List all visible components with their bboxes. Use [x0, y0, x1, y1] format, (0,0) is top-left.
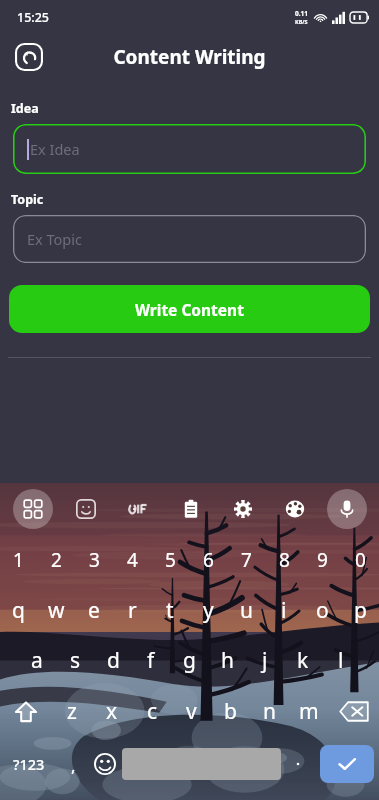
- staticText: 2: [51, 547, 62, 573]
- button[interactable]: Enter: [320, 745, 374, 783]
- button[interactable]: Backspace: [328, 685, 379, 738]
- staticText: ?123: [13, 754, 45, 774]
- staticText: i: [281, 596, 287, 625]
- button[interactable]: p: [341, 585, 379, 635]
- button[interactable]: Write Content: [9, 285, 370, 333]
- button[interactable]: Theme: [269, 483, 321, 535]
- button[interactable]: Apps: [6, 483, 59, 535]
- button[interactable]: 5: [151, 535, 189, 585]
- button[interactable]: 3: [75, 535, 113, 585]
- button[interactable]: g: [170, 635, 208, 685]
- staticText: z: [67, 697, 77, 726]
- button[interactable]: 2: [37, 535, 75, 585]
- staticText: y: [203, 596, 214, 625]
- button[interactable]: e: [75, 585, 113, 635]
- button[interactable]: z: [52, 685, 92, 738]
- staticText: ,: [71, 754, 76, 777]
- button[interactable]: ,: [58, 738, 88, 790]
- button[interactable]: x: [92, 685, 132, 738]
- staticText: h: [221, 646, 234, 675]
- button[interactable]: Settings: [217, 483, 269, 535]
- button[interactable]: Shift: [0, 685, 52, 738]
- staticText: 0: [355, 547, 366, 573]
- button[interactable]: j: [246, 635, 284, 685]
- button[interactable]: Back: [14, 42, 44, 72]
- staticText: 4: [127, 547, 138, 573]
- staticText: Topic: [11, 191, 44, 208]
- staticText: x: [106, 697, 118, 726]
- staticText: 3: [89, 547, 100, 573]
- staticText: l: [338, 646, 344, 675]
- button[interactable]: GIF: [112, 483, 165, 535]
- staticText: 6: [203, 547, 214, 573]
- staticText: Content Writing: [113, 44, 266, 70]
- button[interactable]: Ex Topic: [13, 215, 366, 263]
- staticText: v: [186, 697, 197, 726]
- button[interactable]: t: [151, 585, 189, 635]
- staticText: n: [263, 697, 276, 726]
- button[interactable]: 0: [341, 535, 379, 585]
- staticText: Ex Idea: [30, 139, 80, 159]
- button[interactable]: l: [322, 635, 360, 685]
- staticText: Ex Topic: [27, 229, 82, 249]
- button[interactable]: s: [56, 635, 94, 685]
- staticText: Idea: [11, 100, 39, 117]
- button[interactable]: 9: [303, 535, 341, 585]
- button[interactable]: b: [211, 685, 250, 738]
- button[interactable]: v: [172, 685, 211, 738]
- button[interactable]: 7: [227, 535, 265, 585]
- button[interactable]: 4: [113, 535, 151, 585]
- staticText: s: [70, 646, 81, 675]
- staticText: c: [147, 697, 158, 726]
- staticText: a: [31, 646, 43, 675]
- staticText: r: [128, 596, 137, 625]
- button[interactable]: f: [132, 635, 170, 685]
- button[interactable]: Voice input: [321, 483, 373, 535]
- staticText: d: [107, 646, 120, 675]
- button[interactable]: y: [189, 585, 227, 635]
- staticText: f: [147, 646, 155, 675]
- button[interactable]: 6: [189, 535, 227, 585]
- button[interactable]: ?123: [0, 738, 58, 790]
- button[interactable]: d: [94, 635, 132, 685]
- button[interactable]: o: [303, 585, 341, 635]
- staticText: m: [299, 697, 319, 726]
- button[interactable]: c: [132, 685, 172, 738]
- button[interactable]: i: [265, 585, 303, 635]
- staticText: 9: [317, 547, 328, 573]
- button[interactable]: 8: [265, 535, 303, 585]
- staticText: g: [183, 646, 196, 675]
- button[interactable]: Space: [122, 748, 281, 780]
- staticText: o: [316, 596, 329, 625]
- staticText: 0.11: [295, 9, 308, 18]
- button[interactable]: h: [208, 635, 246, 685]
- staticText: 7: [241, 547, 252, 573]
- button[interactable]: 1: [0, 535, 37, 585]
- button[interactable]: k: [284, 635, 322, 685]
- staticText: 1: [13, 547, 24, 573]
- button[interactable]: Ex Idea: [13, 124, 366, 174]
- button[interactable]: Clipboard: [165, 483, 217, 535]
- button[interactable]: m: [289, 685, 328, 738]
- staticText: 15:25: [17, 9, 50, 26]
- button[interactable]: a: [18, 635, 56, 685]
- staticText: k: [297, 646, 309, 675]
- button[interactable]: [281, 738, 315, 790]
- staticText: e: [88, 596, 100, 625]
- staticText: p: [354, 596, 367, 625]
- staticText: w: [48, 596, 65, 625]
- button[interactable]: Stickers: [59, 483, 112, 535]
- button[interactable]: n: [250, 685, 289, 738]
- staticText: Write Content: [135, 299, 244, 320]
- staticText: j: [262, 646, 268, 675]
- button[interactable]: Emoji: [88, 738, 122, 790]
- button[interactable]: w: [37, 585, 75, 635]
- button[interactable]: q: [0, 585, 37, 635]
- staticText: t: [166, 596, 174, 625]
- button[interactable]: u: [227, 585, 265, 635]
- staticText: u: [240, 596, 253, 625]
- staticText: 8: [279, 547, 290, 573]
- staticText: b: [224, 697, 237, 726]
- button[interactable]: r: [113, 585, 151, 635]
- staticText: 5: [165, 547, 176, 573]
